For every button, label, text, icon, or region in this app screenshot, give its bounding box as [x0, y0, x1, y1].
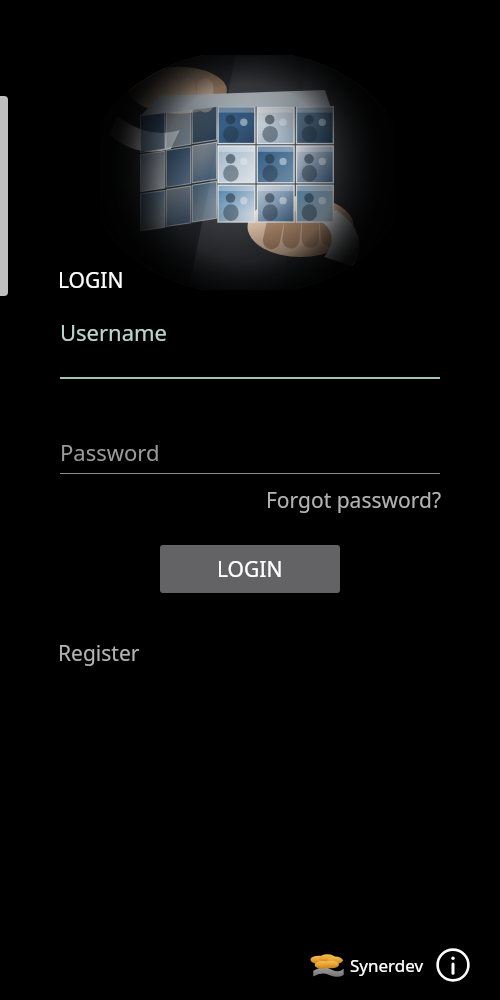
staticText: LOGIN [58, 266, 124, 295]
button[interactable]: Forgot password? [265, 482, 500, 519]
button[interactable]: Register [54, 635, 144, 672]
button[interactable]: Information [434, 946, 472, 984]
staticText: Password [60, 437, 160, 467]
staticText: LOGIN [217, 555, 283, 584]
button[interactable]: Password [0, 437, 500, 474]
button[interactable]: Username [0, 317, 500, 379]
button[interactable]: LOGIN [160, 545, 340, 593]
staticText: Username [60, 317, 168, 347]
staticText: Synerdev [350, 954, 424, 977]
